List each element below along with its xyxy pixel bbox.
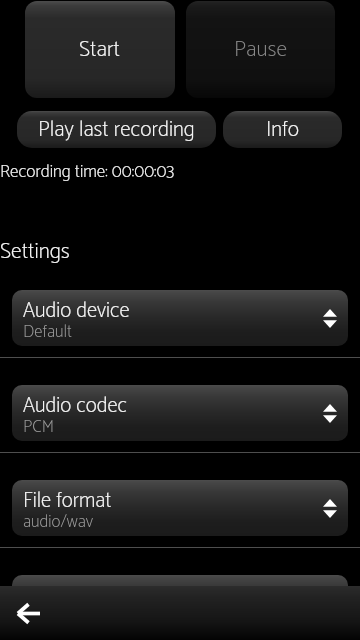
staticText: Pause	[234, 32, 287, 68]
staticText: PCM	[23, 413, 55, 441]
button[interactable]: Audio device	[12, 290, 348, 346]
staticText: Recording time: 00:00:03	[0, 158, 175, 187]
button[interactable]: Audio codec	[12, 385, 348, 441]
staticText: audio/wav	[23, 508, 94, 536]
button[interactable]: Info	[223, 111, 342, 148]
staticText: Audio codec	[23, 389, 127, 423]
staticText: Audio device	[23, 294, 130, 328]
button[interactable]: Sample rate	[12, 575, 348, 631]
button[interactable]: Play last recording	[17, 111, 216, 148]
button[interactable]: File format	[12, 480, 348, 536]
staticText: Start	[79, 32, 121, 68]
button[interactable]: Back	[6, 591, 50, 635]
staticText: File format	[23, 484, 112, 518]
staticText: Sample rate	[23, 579, 123, 613]
button[interactable]: Start	[25, 1, 175, 98]
button[interactable]: Pause	[186, 1, 335, 98]
staticText: 44100	[23, 603, 65, 631]
staticText: Default	[23, 318, 72, 346]
staticText: Play last recording	[38, 112, 195, 147]
staticText: Info	[266, 112, 300, 147]
staticText: Settings	[0, 234, 70, 270]
